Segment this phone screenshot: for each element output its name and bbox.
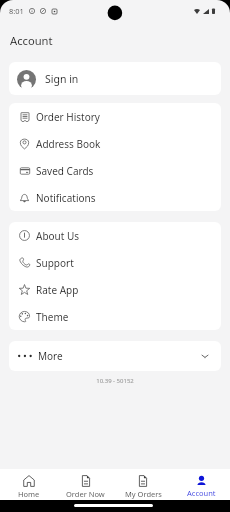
staticText: My Orders xyxy=(125,489,162,499)
button[interactable]: Theme xyxy=(9,303,221,330)
button[interactable]: More xyxy=(9,341,221,371)
button[interactable]: Support xyxy=(9,249,221,276)
button[interactable]: Notifications xyxy=(9,184,221,211)
staticText: 8:01 xyxy=(9,6,24,16)
staticText: About Us xyxy=(36,229,80,243)
staticText: Account xyxy=(187,488,216,498)
staticText: Theme xyxy=(36,310,69,324)
staticText: Address Book xyxy=(36,137,101,151)
staticText: Order History xyxy=(36,110,100,124)
staticText: Support xyxy=(36,256,74,270)
button[interactable]: My Orders xyxy=(114,469,172,500)
button[interactable]: Address Book xyxy=(9,130,221,157)
staticText: Home xyxy=(18,489,40,499)
staticText: 10.39 - 50152 xyxy=(0,377,230,385)
staticText: Account xyxy=(10,33,53,48)
button[interactable]: Saved Cards xyxy=(9,157,221,184)
button[interactable]: Sign in xyxy=(9,62,221,95)
button[interactable]: Order History xyxy=(9,103,221,130)
button[interactable]: Account xyxy=(172,469,230,500)
button[interactable]: Rate App xyxy=(9,276,221,303)
button[interactable]: Home xyxy=(0,469,57,500)
staticText: Sign in xyxy=(45,72,79,86)
button[interactable]: Order Now xyxy=(57,469,114,500)
button[interactable]: About Us xyxy=(9,222,221,249)
staticText: Rate App xyxy=(36,283,79,297)
staticText: Order Now xyxy=(66,489,105,499)
staticText: More xyxy=(38,349,63,363)
staticText: Notifications xyxy=(36,191,96,205)
staticText: Saved Cards xyxy=(36,164,94,178)
